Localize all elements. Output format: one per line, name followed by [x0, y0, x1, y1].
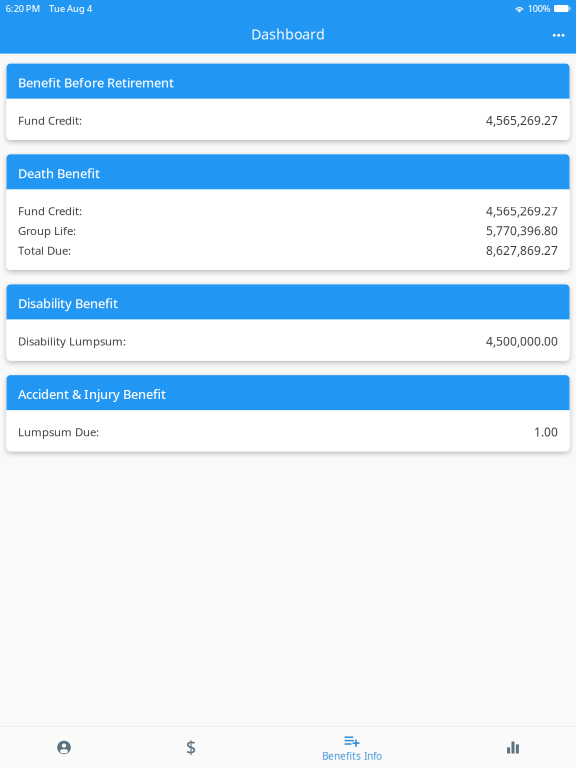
staticText: Dashboard — [251, 25, 325, 44]
staticText: Group Life: — [18, 223, 76, 238]
staticText: Total Due: — [18, 243, 71, 258]
staticText: $ — [186, 736, 196, 759]
staticText: Disability Benefit — [18, 295, 118, 312]
staticText: 4,565,269.27 — [486, 203, 558, 219]
staticText: 5,770,396.80 — [486, 222, 558, 239]
staticText: Tue Aug 4 — [49, 2, 92, 15]
button[interactable]: Profile — [0, 727, 128, 768]
staticText: 100% — [528, 2, 551, 15]
button[interactable]: Benefits Info — [254, 727, 450, 768]
staticText: Lumpsum Due: — [18, 424, 99, 439]
staticText: Fund Credit: — [18, 112, 82, 128]
staticText: 6:20 PM — [5, 2, 40, 15]
button[interactable]: Statements — [450, 727, 576, 768]
staticText: Benefits Info — [322, 749, 382, 763]
staticText: 1.00 — [534, 424, 558, 440]
staticText: Fund Credit: — [18, 203, 82, 219]
staticText: Disability Lumpsum: — [18, 333, 126, 349]
staticText: 8,627,869.27 — [486, 242, 558, 258]
staticText: 4,500,000.00 — [486, 333, 558, 349]
staticText: Death Benefit — [18, 165, 100, 182]
button[interactable]: Contributions — [128, 727, 254, 768]
staticText: 4,565,269.27 — [486, 112, 558, 128]
staticText: Benefit Before Retirement — [18, 74, 174, 91]
staticText: Accident & Injury Benefit — [18, 385, 166, 403]
button[interactable]: More options — [530, 17, 576, 53]
